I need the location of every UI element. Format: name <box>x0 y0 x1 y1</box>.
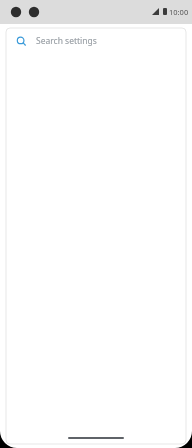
button[interactable]: Search <box>6 28 186 54</box>
staticText: Search settings <box>36 35 97 47</box>
other: Search <box>16 36 27 47</box>
staticText: 10:00 <box>169 7 189 17</box>
